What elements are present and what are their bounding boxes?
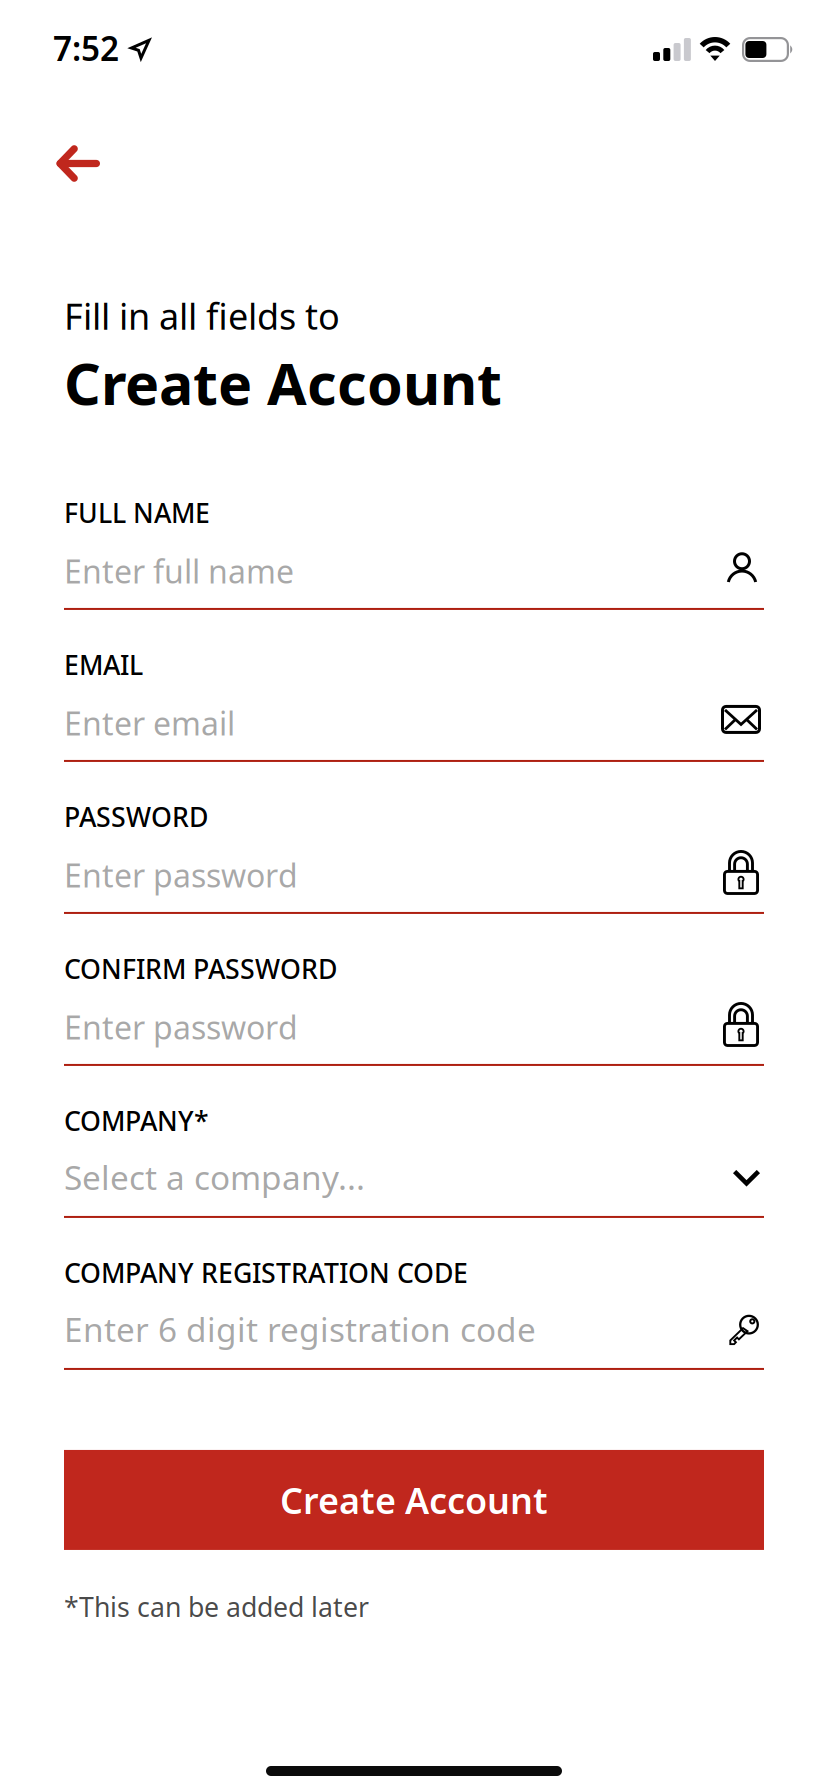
staticText: Create Account xyxy=(64,345,502,421)
button[interactable]: COMPANY REGISTRATION CODE xyxy=(64,1256,764,1370)
button[interactable]: EMAIL xyxy=(64,648,764,762)
staticText: Enter 6 digit registration code xyxy=(64,1307,536,1351)
button[interactable]: Create Account xyxy=(64,1450,764,1550)
staticText: COMPANY REGISTRATION CODE xyxy=(64,1255,468,1290)
staticText: Create Account xyxy=(280,1476,548,1524)
staticText: FULL NAME xyxy=(64,495,210,530)
button[interactable]: FULL NAME xyxy=(64,496,764,610)
staticText: Enter password xyxy=(64,854,298,896)
staticText: Fill in all fields to xyxy=(64,292,340,340)
staticText: 7:52 xyxy=(53,26,119,70)
staticText: Enter email xyxy=(64,702,235,744)
staticText: EMAIL xyxy=(64,647,143,682)
staticText: CONFIRM PASSWORD xyxy=(64,951,337,986)
staticText: PASSWORD xyxy=(64,799,208,834)
staticText: Enter full name xyxy=(64,550,294,592)
button[interactable]: PASSWORD xyxy=(64,800,764,914)
staticText: Enter password xyxy=(64,1006,298,1048)
button[interactable]: COMPANY* xyxy=(64,1104,764,1218)
button[interactable]: CONFIRM PASSWORD xyxy=(64,952,764,1066)
button[interactable]: Back xyxy=(42,129,114,198)
staticText: Select a company... xyxy=(64,1155,365,1199)
staticText: *This can be added later xyxy=(64,1589,369,1624)
staticText: COMPANY* xyxy=(64,1103,209,1138)
